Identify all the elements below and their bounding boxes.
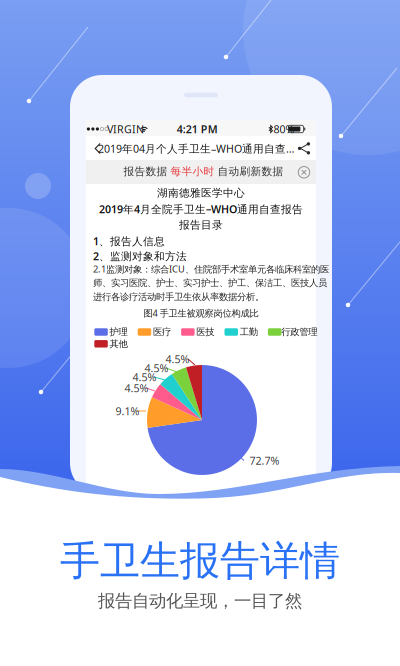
staticText: 报告自动化呈现，一目了然	[98, 590, 302, 612]
button[interactable]: Dismiss banner	[295, 163, 313, 181]
staticText: VIRGIN	[107, 122, 144, 136]
staticText: 手卫生报告详情	[60, 536, 340, 585]
staticText: 自动刷新数据	[214, 165, 283, 178]
staticText: 报告目录	[179, 218, 223, 231]
staticText: 其他	[109, 338, 127, 350]
staticText: 行政管理	[281, 326, 317, 338]
staticText: 报告数据	[123, 165, 170, 178]
staticText: 72.7%	[249, 453, 279, 468]
staticText: 2019年04月个人手卫生–WHO通用自查…	[98, 141, 294, 156]
staticText: 9.1%	[115, 404, 139, 418]
button[interactable]: Share	[293, 137, 315, 159]
staticText: 护理	[109, 326, 127, 338]
staticText: 2.1监测对象：综合ICU、住院部手术室单元各临床科室的医	[93, 263, 329, 275]
staticText: 4.5%	[165, 352, 189, 366]
staticText: 4.5%	[132, 370, 156, 384]
staticText: 4:21 PM	[177, 122, 218, 136]
staticText: 4.5%	[144, 361, 168, 375]
staticText: 2019年4月全院手卫生–WHO通用自查报告	[99, 202, 303, 216]
staticText: 医技	[196, 326, 214, 338]
staticText: 图4 手卫生被观察岗位构成比	[143, 307, 258, 319]
staticText: 1、报告人信息	[93, 234, 165, 248]
staticText: 湖南德雅医学中心	[157, 186, 245, 199]
staticText: 工勤	[240, 326, 258, 338]
staticText: 进行各诊疗活动时手卫生依从率数据分析。	[93, 291, 264, 303]
staticText: 2、监测对象和方法	[93, 249, 187, 263]
staticText: 80%	[273, 122, 294, 136]
staticText: 医疗	[153, 326, 171, 338]
staticText: 4.5%	[124, 381, 148, 395]
staticText: 每半小时	[170, 165, 214, 178]
staticText: 师、实习医院、护士、实习护士、护工、保洁工、医技人员	[93, 277, 327, 289]
button[interactable]: Back	[87, 136, 109, 160]
